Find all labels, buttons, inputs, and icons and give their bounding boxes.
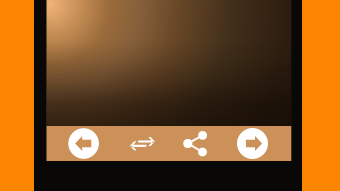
button[interactable]: Share [46,126,291,161]
button[interactable]: Next [46,126,291,161]
button[interactable]: Previous [46,126,291,161]
button[interactable]: Swap [46,126,291,161]
